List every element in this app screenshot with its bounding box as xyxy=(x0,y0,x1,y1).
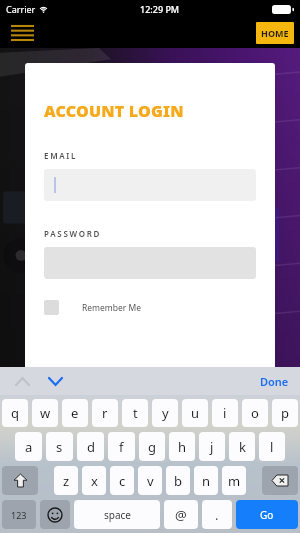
staticText: i xyxy=(223,404,227,422)
button[interactable]: t xyxy=(122,399,148,427)
staticText: EMAIL xyxy=(44,150,78,161)
staticText: u xyxy=(191,404,200,422)
button[interactable]: 123 xyxy=(2,500,36,529)
staticText: ACCOUNT LOGIN xyxy=(44,100,184,122)
button[interactable]: Go xyxy=(236,500,298,529)
button[interactable]: y xyxy=(152,399,178,427)
staticText: v xyxy=(147,472,154,490)
button[interactable]: u xyxy=(182,399,208,427)
button[interactable]: m xyxy=(222,466,246,495)
button[interactable]: i xyxy=(212,399,238,427)
button[interactable]: . xyxy=(202,500,232,529)
staticText: f xyxy=(119,438,124,456)
staticText: o xyxy=(251,404,259,422)
button[interactable]: z xyxy=(54,466,78,495)
button[interactable]: h xyxy=(169,432,195,461)
staticText: s xyxy=(56,438,63,456)
button[interactable]: Shift xyxy=(2,466,38,495)
staticText: PASSWORD xyxy=(44,228,102,239)
button[interactable]: @ xyxy=(164,500,198,529)
staticText: w xyxy=(40,404,51,422)
button[interactable]: v xyxy=(138,466,162,495)
staticText: y xyxy=(162,404,169,422)
staticText: Go xyxy=(260,508,274,522)
button[interactable]: Next field xyxy=(44,370,66,392)
staticText: c xyxy=(119,472,126,490)
staticText: 12:29 PM xyxy=(140,3,180,15)
button[interactable]: l xyxy=(259,432,285,461)
button[interactable]: k xyxy=(229,432,255,461)
button[interactable]: r xyxy=(92,399,118,427)
button[interactable]: space xyxy=(74,500,160,529)
staticText: b xyxy=(174,472,182,490)
staticText: g xyxy=(148,438,156,456)
staticText: x xyxy=(91,472,98,490)
button[interactable] xyxy=(44,169,256,201)
button[interactable]: p xyxy=(272,399,298,427)
staticText: l xyxy=(270,438,274,456)
staticText: j xyxy=(210,438,214,456)
button[interactable]: b xyxy=(166,466,190,495)
staticText: Done xyxy=(260,374,289,389)
staticText: a xyxy=(25,438,33,456)
button[interactable]: g xyxy=(139,432,165,461)
button[interactable]: f xyxy=(108,432,135,461)
button[interactable]: o xyxy=(242,399,268,427)
staticText: z xyxy=(63,472,70,490)
button[interactable]: q xyxy=(2,399,28,427)
staticText: HOME xyxy=(261,27,289,39)
staticText: m xyxy=(228,472,241,490)
button[interactable]: Delete xyxy=(262,466,298,495)
button[interactable]: Done xyxy=(260,374,289,389)
staticText: k xyxy=(239,438,246,456)
button[interactable]: e xyxy=(62,399,88,427)
button[interactable]: Emoji xyxy=(40,500,70,529)
button[interactable]: Open menu xyxy=(7,20,37,46)
button[interactable]: HOME xyxy=(256,22,294,44)
button[interactable]: s xyxy=(46,432,73,461)
staticText: d xyxy=(87,438,95,456)
button[interactable]: w xyxy=(32,399,58,427)
staticText: 123 xyxy=(11,509,27,521)
staticText: . xyxy=(215,506,219,524)
staticText: t xyxy=(133,404,138,422)
staticText: space xyxy=(104,508,131,522)
button[interactable]: c xyxy=(110,466,134,495)
staticText: h xyxy=(178,438,187,456)
button[interactable]: n xyxy=(194,466,218,495)
button[interactable]: d xyxy=(77,432,104,461)
staticText: p xyxy=(281,404,289,422)
staticText: Carrier xyxy=(6,3,36,15)
staticText: r xyxy=(102,404,108,422)
staticText: Remember Me xyxy=(82,302,142,314)
button[interactable]: j xyxy=(199,432,225,461)
staticText: e xyxy=(71,404,79,422)
staticText: @ xyxy=(175,506,187,524)
button[interactable]: x xyxy=(82,466,106,495)
staticText: n xyxy=(202,472,211,490)
button[interactable]: a xyxy=(15,432,42,461)
staticText: q xyxy=(11,404,19,422)
button[interactable]: Previous field xyxy=(11,370,33,392)
button[interactable]: Remember Me xyxy=(44,300,142,315)
